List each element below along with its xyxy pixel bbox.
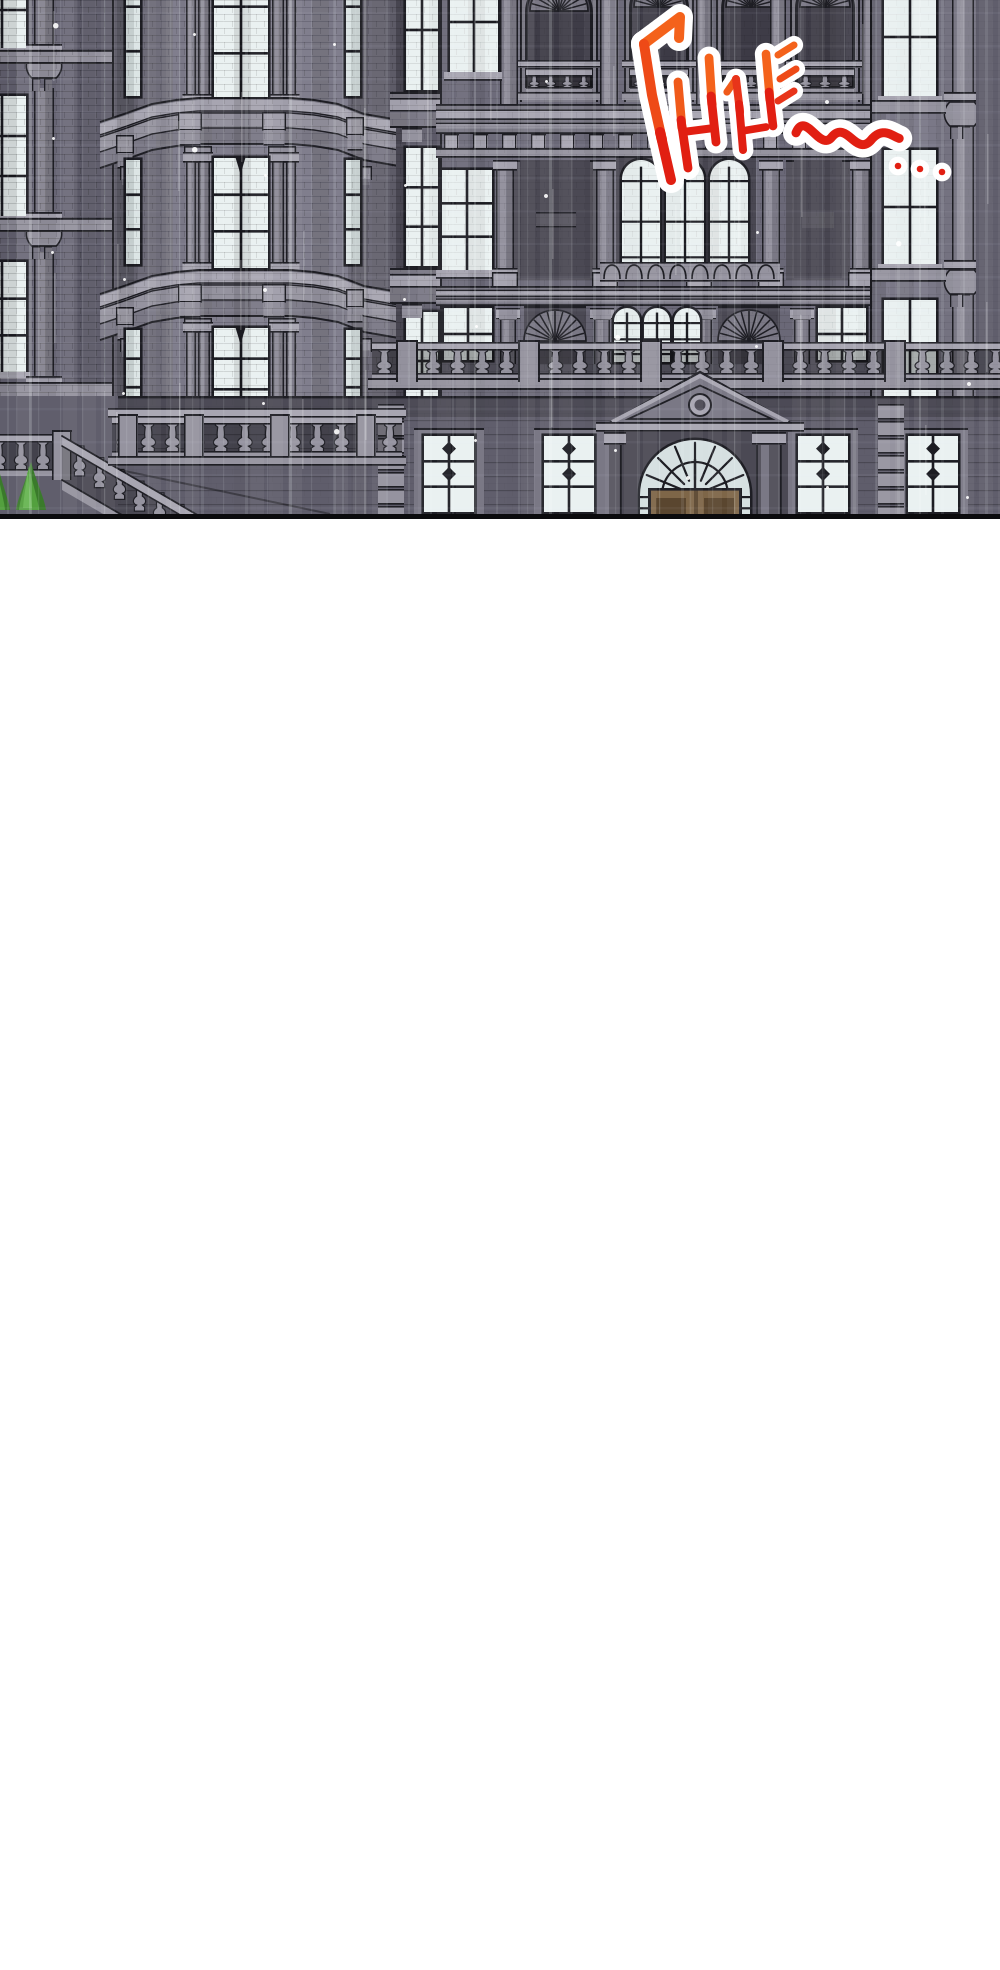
button[interactable]: Comic panel: [0, 0, 1000, 519]
